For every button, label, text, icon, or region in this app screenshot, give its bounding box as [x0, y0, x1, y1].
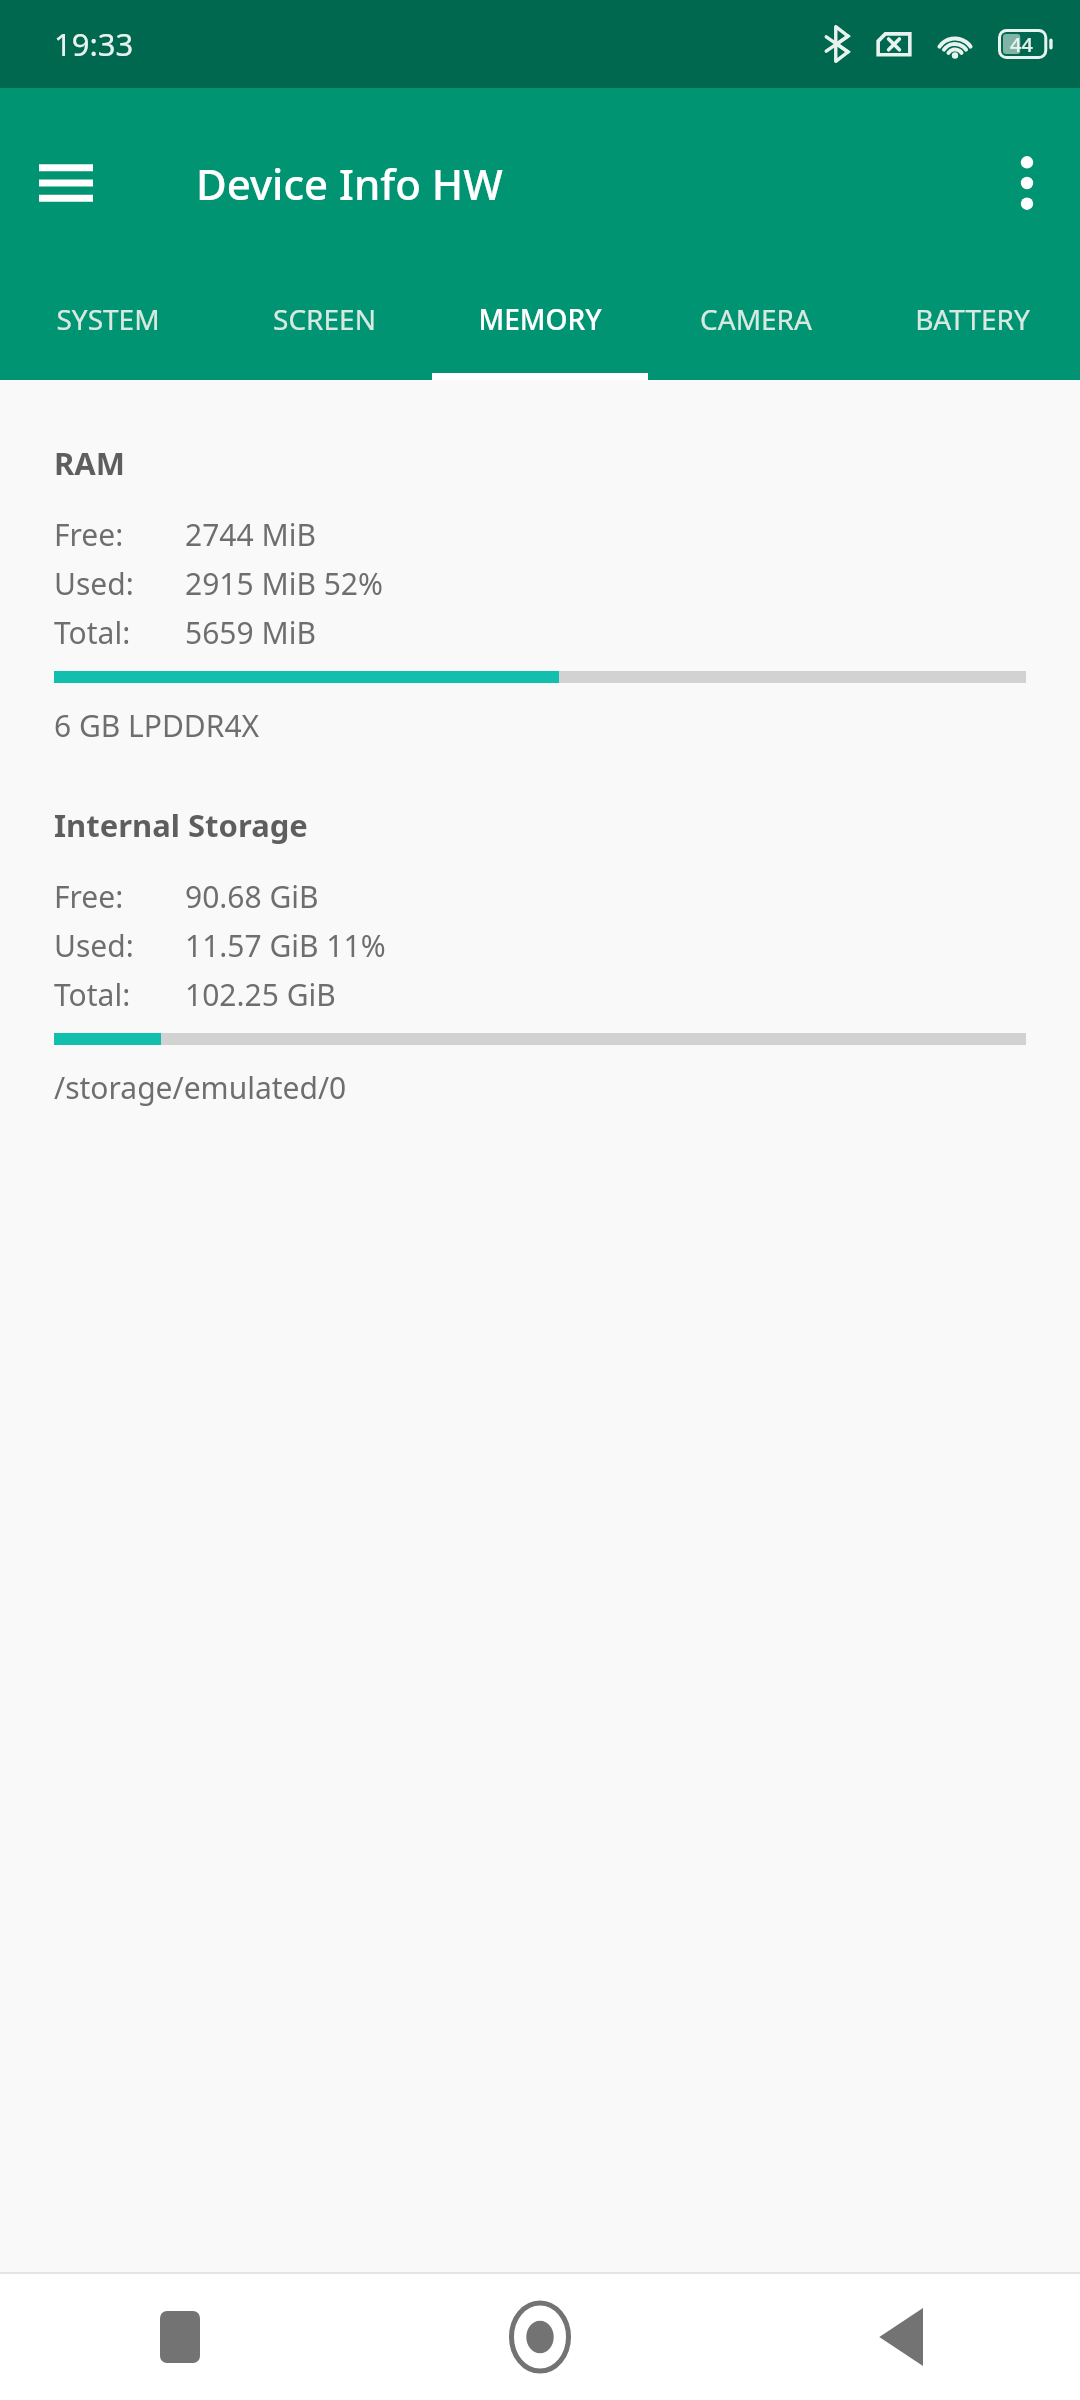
button[interactable]: Back: [720, 2274, 1080, 2400]
staticText: CAMERA: [700, 300, 812, 338]
staticText: Free:: [54, 514, 124, 555]
staticText: Used:: [54, 925, 134, 966]
staticText: 102.25 GiB: [185, 974, 336, 1015]
staticText: 2744 MiB: [185, 514, 316, 555]
staticText: Total:: [54, 974, 131, 1015]
staticText: RAM: [54, 442, 126, 484]
button[interactable]: Home: [360, 2274, 720, 2400]
button[interactable]: Recent apps: [0, 2274, 360, 2400]
button[interactable]: SYSTEM: [0, 278, 216, 380]
staticText: 11.57 GiB 11%: [185, 925, 386, 966]
staticText: /storage/emulated/0: [54, 1067, 347, 1108]
button[interactable]: Internal Storage: [0, 804, 1080, 1108]
staticText: SCREEN: [273, 300, 376, 338]
button[interactable]: Open navigation menu: [28, 145, 104, 221]
staticText: 90.68 GiB: [185, 876, 319, 917]
button[interactable]: BATTERY: [864, 278, 1080, 380]
staticText: 2915 MiB 52%: [185, 563, 383, 604]
staticText: Device Info HW: [196, 155, 503, 212]
staticText: Used:: [54, 563, 134, 604]
button[interactable]: MEMORY: [432, 278, 648, 380]
staticText: SYSTEM: [56, 300, 160, 338]
staticText: 5659 MiB: [185, 612, 316, 653]
staticText: 44: [1010, 31, 1033, 58]
button[interactable]: SCREEN: [216, 278, 432, 380]
button[interactable]: RAM: [0, 442, 1080, 746]
staticText: Total:: [54, 612, 131, 653]
staticText: BATTERY: [915, 300, 1030, 338]
staticText: 6 GB LPDDR4X: [54, 705, 260, 746]
staticText: 19:33: [54, 23, 134, 65]
staticText: MEMORY: [478, 300, 602, 338]
staticText: Free:: [54, 876, 124, 917]
button[interactable]: CAMERA: [648, 278, 864, 380]
button[interactable]: More options: [988, 144, 1066, 222]
staticText: Internal Storage: [54, 804, 308, 846]
